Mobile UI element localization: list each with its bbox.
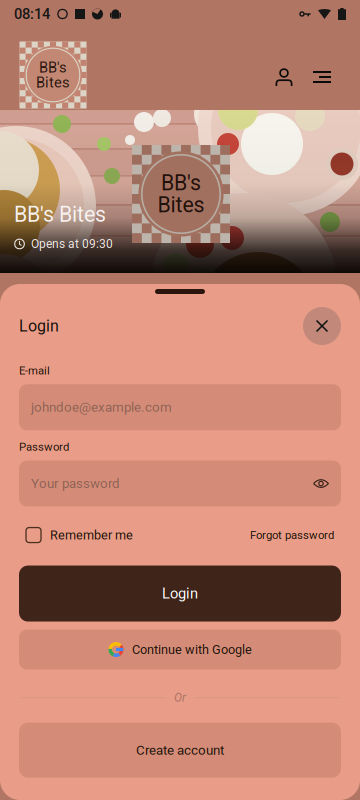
staticText: Create account [136,742,224,758]
button[interactable]: Create account [19,723,341,778]
staticText: Login [19,317,59,335]
staticText: johndoe@example.com [31,399,172,415]
staticText: Opens at 09:30 [31,237,113,251]
button[interactable]: Show password [313,478,329,489]
staticText: BB's [39,59,67,76]
staticText: BB's [161,170,201,195]
button[interactable]: Forgot password [250,522,334,548]
staticText: Bites [36,74,70,91]
staticText: 08:14 [14,5,50,23]
staticText: Forgot password [250,528,334,542]
button[interactable]: Continue with Google [19,630,341,670]
button[interactable]: Account [267,60,300,94]
button[interactable]: Remember me [26,522,133,549]
staticText: E-mail [19,364,50,377]
staticText: Login [162,585,198,602]
staticText: Continue with Google [132,642,252,657]
button[interactable]: Menu [305,63,339,91]
staticText: Remember me [50,528,133,542]
staticText: Bites [157,193,204,218]
button[interactable]: Login [19,566,341,622]
staticText: Or [174,691,186,705]
staticText: Password [19,440,69,454]
staticText: BB's Bites [14,202,106,227]
staticText: Your password [31,476,120,491]
button[interactable]: Close [303,307,341,345]
